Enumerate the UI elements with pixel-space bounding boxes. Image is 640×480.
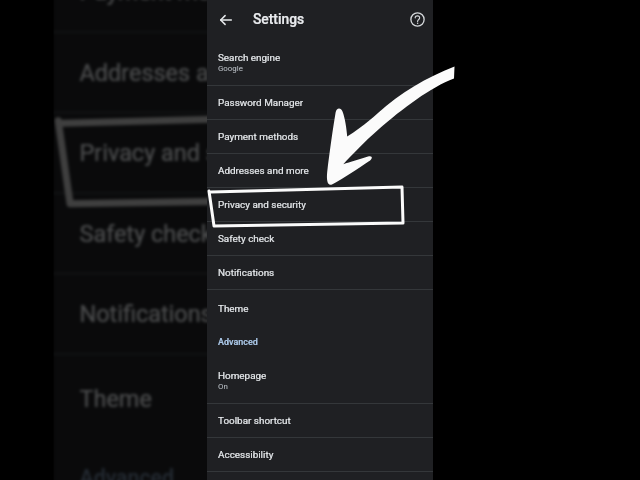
button[interactable]: Help and feedback bbox=[407, 9, 428, 30]
button[interactable]: Privacy and security bbox=[53, 114, 226, 194]
button[interactable]: Password Manager bbox=[207, 86, 433, 120]
staticText: Settings bbox=[253, 11, 305, 27]
staticText: Password Manager bbox=[218, 97, 304, 109]
button[interactable]: Notifications bbox=[207, 256, 433, 290]
staticText: Safety check bbox=[218, 233, 275, 245]
button[interactable]: Addresses and more bbox=[207, 154, 433, 188]
staticText: Theme bbox=[79, 386, 153, 414]
staticText: Safety check bbox=[79, 220, 214, 249]
button[interactable]: Theme bbox=[53, 355, 226, 443]
staticText: Payment methods bbox=[79, 0, 226, 7]
button[interactable]: Payment methods bbox=[207, 120, 433, 154]
staticText: Search engine bbox=[218, 52, 281, 64]
button[interactable]: Accessibility bbox=[207, 438, 433, 472]
staticText: On bbox=[218, 382, 228, 391]
staticText: Notifications bbox=[79, 301, 214, 329]
staticText: Addresses and more bbox=[218, 165, 309, 177]
staticText: Toolbar shortcut bbox=[218, 415, 291, 427]
staticText: Advanced bbox=[218, 337, 258, 348]
button[interactable]: Homepage bbox=[207, 357, 433, 404]
button[interactable]: Toolbar shortcut bbox=[207, 404, 433, 438]
staticText: Accessibility bbox=[218, 449, 274, 461]
button[interactable]: Privacy and security bbox=[207, 188, 433, 222]
button[interactable]: Safety check bbox=[53, 194, 226, 275]
staticText: Privacy and security bbox=[218, 199, 306, 211]
button[interactable]: Safety check bbox=[207, 222, 433, 256]
button[interactable]: Addresses and more bbox=[53, 33, 226, 114]
staticText: Theme bbox=[218, 303, 249, 315]
button[interactable]: Back bbox=[214, 8, 238, 32]
staticText: Advanced bbox=[79, 466, 174, 480]
button[interactable]: Notifications bbox=[53, 275, 226, 355]
staticText: Homepage bbox=[218, 370, 267, 382]
staticText: Google bbox=[218, 64, 243, 73]
button[interactable]: Theme bbox=[207, 290, 433, 327]
staticText: Addresses and more bbox=[79, 59, 226, 88]
button[interactable]: Payment methods bbox=[53, 0, 226, 33]
staticText: Payment methods bbox=[218, 131, 299, 143]
staticText: Notifications bbox=[218, 267, 275, 279]
staticText: Privacy and security bbox=[79, 140, 226, 168]
button[interactable]: Search engine bbox=[207, 39, 433, 86]
